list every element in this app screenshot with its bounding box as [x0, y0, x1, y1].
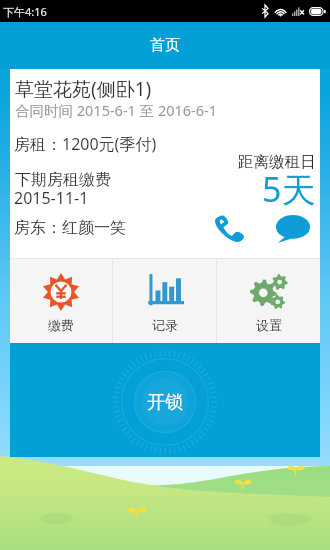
button[interactable]: 拨打电话 — [207, 206, 251, 250]
staticText: 设置 — [256, 317, 282, 333]
button[interactable]: 设置 — [217, 259, 320, 343]
staticText: 下期房租缴费 — [15, 170, 111, 190]
staticText: 距离缴租日 — [238, 152, 316, 172]
staticText: 合同时间 2015-6-1 至 2016-6-1 — [15, 100, 218, 120]
staticText: 下午4:16 — [3, 4, 47, 19]
button[interactable]: 缴费 — [10, 259, 112, 343]
button[interactable]: 发送消息 — [271, 207, 315, 251]
button[interactable]: 记录 — [113, 259, 216, 343]
staticText: 房东：红颜一笑 — [14, 218, 126, 238]
staticText: 房租：1200元(季付) — [14, 133, 157, 155]
staticText: 缴费 — [48, 317, 74, 333]
staticText: 首页 — [150, 36, 180, 55]
staticText: 5天 — [262, 166, 316, 208]
button[interactable]: 开锁 — [112, 349, 218, 455]
staticText: 记录 — [152, 317, 178, 333]
staticText: 草堂花苑(侧卧1) — [15, 76, 152, 102]
staticText: 2015-11-1 — [14, 187, 89, 209]
staticText: 开锁 — [147, 391, 183, 414]
